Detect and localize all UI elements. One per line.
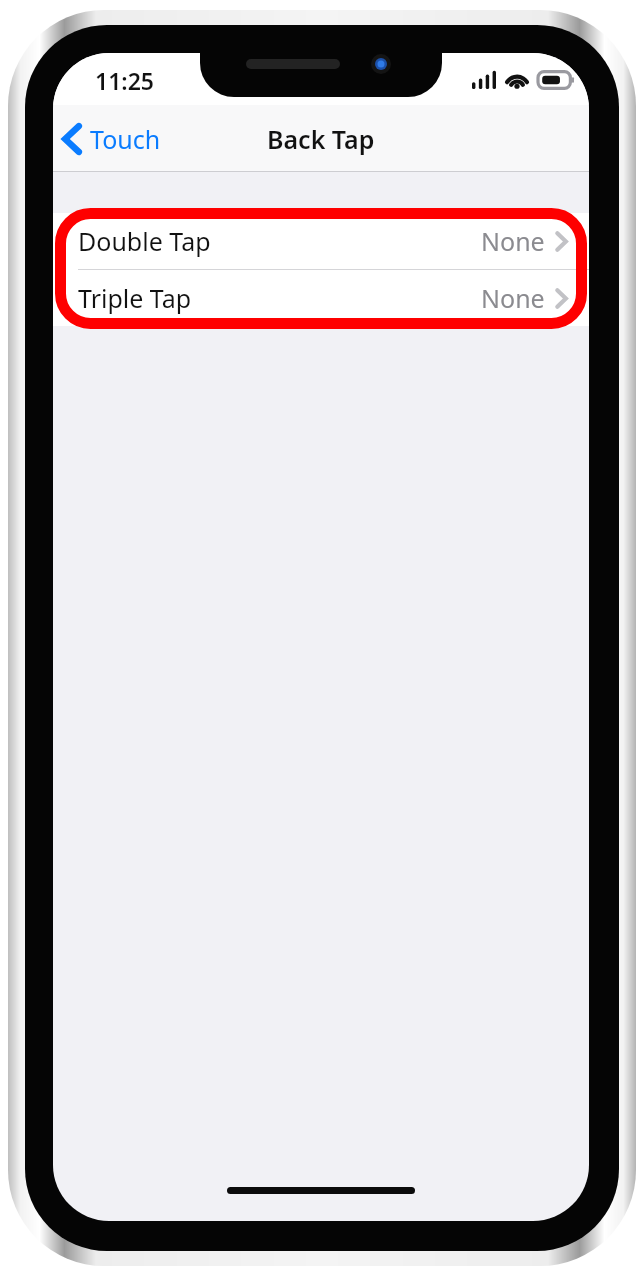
staticText: Double Tap bbox=[78, 224, 211, 258]
staticText: None bbox=[481, 281, 545, 315]
staticText: None bbox=[481, 224, 545, 258]
staticText: Back Tap bbox=[267, 122, 375, 156]
button[interactable]: Triple Tap bbox=[53, 270, 589, 326]
button[interactable]: Touch bbox=[53, 112, 175, 166]
staticText: Touch bbox=[90, 122, 161, 156]
button[interactable]: Double Tap bbox=[53, 213, 589, 269]
staticText: 11:25 bbox=[95, 65, 154, 96]
staticText: Triple Tap bbox=[78, 281, 192, 315]
